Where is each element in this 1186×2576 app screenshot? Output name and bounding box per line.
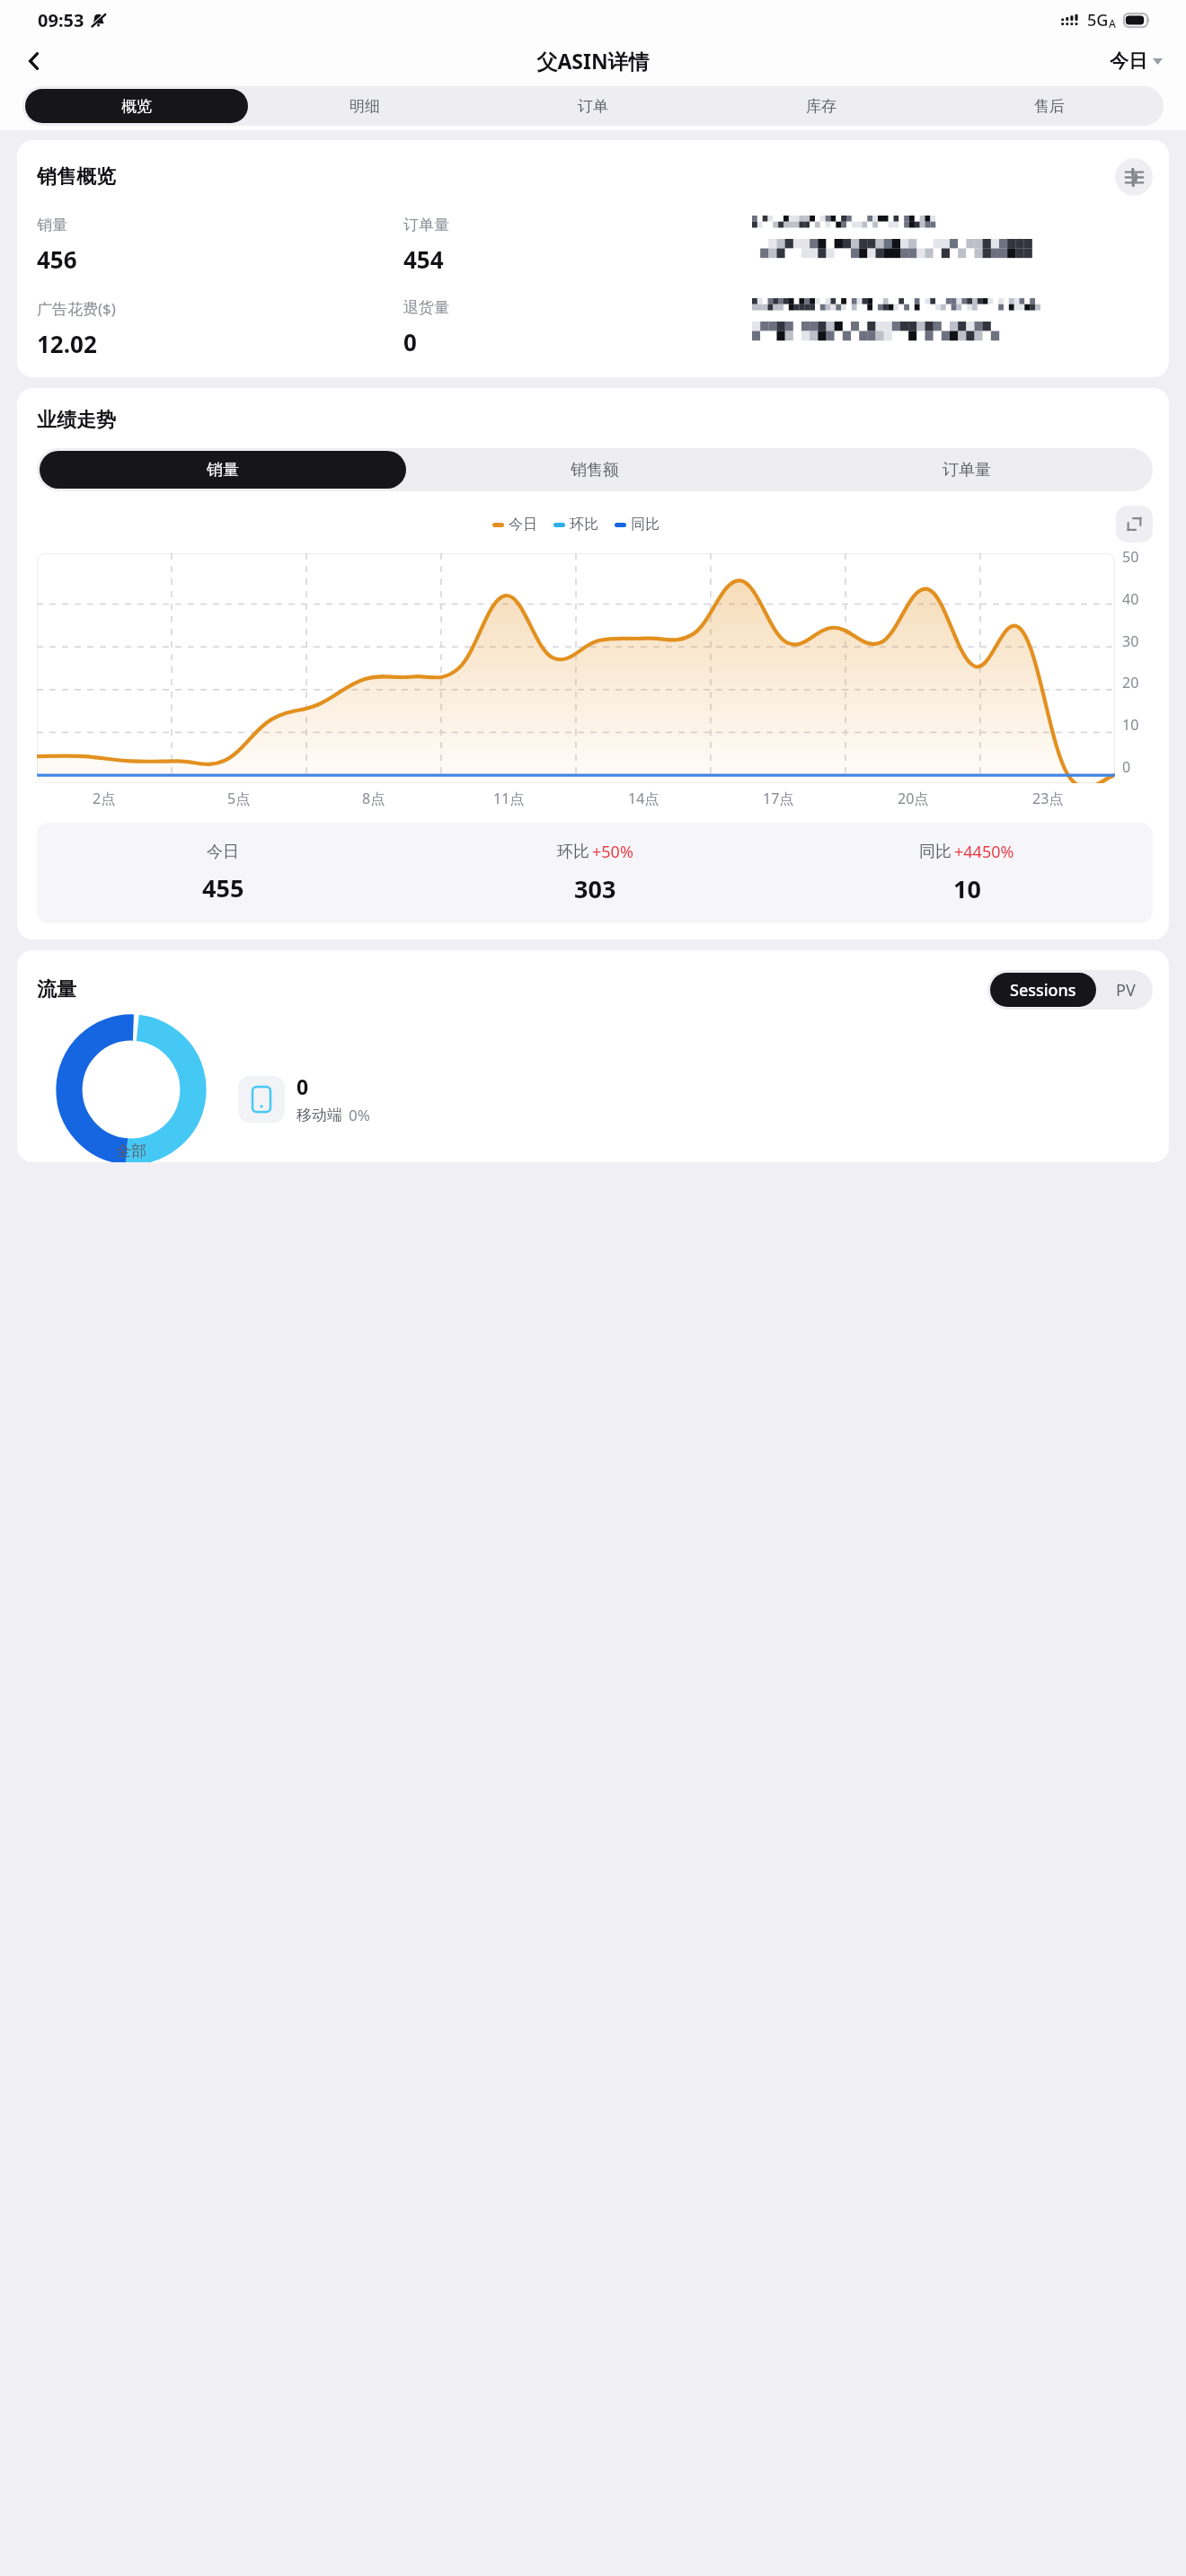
staticText: 明细 xyxy=(350,97,380,116)
staticText: 销量 xyxy=(207,460,239,481)
button[interactable]: Sessions xyxy=(990,973,1096,1007)
staticText: +50% xyxy=(592,841,633,863)
staticText: 456 xyxy=(37,243,77,275)
staticText: 销量 xyxy=(37,216,67,234)
staticText: 今日 xyxy=(509,516,537,534)
staticText: 环比 xyxy=(557,842,589,862)
button[interactable]: 订单 xyxy=(479,86,707,126)
button[interactable]: 库存 xyxy=(707,86,935,126)
staticText: 父ASIN详情 xyxy=(536,47,650,75)
button[interactable]: 销售额 xyxy=(409,448,781,491)
staticText: 5点 xyxy=(227,789,251,808)
staticText: 303 xyxy=(574,872,616,905)
staticText: 0 xyxy=(1122,757,1131,777)
staticText: 广告花费($) xyxy=(37,298,116,319)
staticText: 8点 xyxy=(362,789,385,808)
staticText: 09:53 xyxy=(38,8,84,32)
staticText: 14点 xyxy=(628,789,659,808)
staticText: A xyxy=(1109,16,1116,31)
staticText: 流量 xyxy=(37,977,76,1002)
staticText: Sessions xyxy=(1010,979,1076,1001)
button[interactable]: 概览 xyxy=(25,89,248,123)
staticText: 今日 xyxy=(207,842,239,862)
button[interactable]: Back xyxy=(16,43,52,79)
staticText: 销售概览 xyxy=(37,164,116,190)
button[interactable]: 售后 xyxy=(935,86,1164,126)
staticText: 订单量 xyxy=(403,216,449,234)
staticText: +4450% xyxy=(954,841,1014,863)
staticText: 10 xyxy=(1122,715,1139,735)
button[interactable]: 明细 xyxy=(251,86,479,126)
button[interactable]: PV xyxy=(1099,970,1153,1010)
staticText: 同比 xyxy=(631,516,659,534)
staticText: 退货量 xyxy=(403,298,449,317)
staticText: 455 xyxy=(202,871,244,904)
staticText: 50 xyxy=(1122,547,1139,567)
staticText: PV xyxy=(1116,979,1136,1001)
staticText: 11点 xyxy=(493,789,525,808)
staticText: 概览 xyxy=(121,97,152,116)
button[interactable]: Expand chart xyxy=(1116,506,1153,543)
staticText: 0 xyxy=(296,1072,309,1100)
staticText: 同比 xyxy=(919,842,951,862)
button[interactable]: 订单量 xyxy=(781,448,1153,491)
staticText: 订单量 xyxy=(943,460,991,481)
button[interactable]: 销量 xyxy=(40,451,406,489)
button[interactable]: Filter settings xyxy=(1115,158,1153,196)
staticText: 全部 xyxy=(116,1142,146,1160)
staticText: 20点 xyxy=(898,789,929,808)
button[interactable]: 今日 xyxy=(1106,44,1166,78)
staticText: 2点 xyxy=(93,789,116,808)
staticText: 12.02 xyxy=(37,328,97,359)
staticText: 10 xyxy=(953,872,981,905)
staticText: 移动端 xyxy=(296,1106,342,1125)
staticText: 20 xyxy=(1122,673,1139,693)
staticText: 订单 xyxy=(578,97,608,116)
staticText: 0 xyxy=(403,326,417,357)
staticText: 销售额 xyxy=(571,460,619,481)
staticText: 今日 xyxy=(1110,49,1147,73)
staticText: 售后 xyxy=(1034,97,1065,116)
staticText: 17点 xyxy=(763,789,794,808)
staticText: 5G xyxy=(1087,9,1109,31)
staticText: 0% xyxy=(349,1105,370,1125)
staticText: 库存 xyxy=(806,97,836,116)
staticText: 30 xyxy=(1122,631,1139,651)
staticText: 40 xyxy=(1122,589,1139,609)
staticText: 业绩走势 xyxy=(37,408,116,433)
staticText: 环比 xyxy=(570,516,598,534)
staticText: 23点 xyxy=(1032,789,1064,808)
staticText: 454 xyxy=(403,243,444,275)
